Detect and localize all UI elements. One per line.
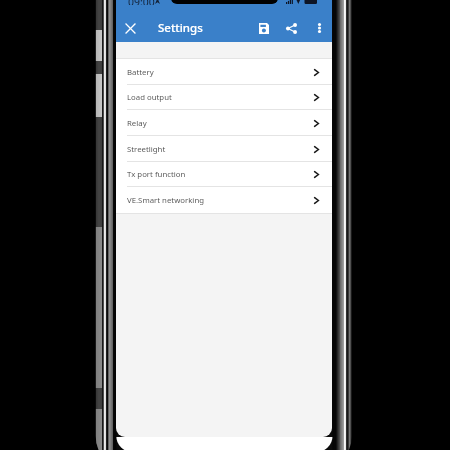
button[interactable]: Streetlight xyxy=(116,136,332,162)
staticText: Settings xyxy=(158,20,203,36)
button[interactable]: Load output xyxy=(116,85,332,110)
button[interactable]: Close xyxy=(119,17,141,39)
button[interactable]: Battery xyxy=(116,59,332,85)
button[interactable]: VE.Smart networking xyxy=(116,187,332,213)
staticText: Relay xyxy=(127,118,147,129)
staticText: Streetlight xyxy=(127,144,166,155)
button[interactable]: More options xyxy=(310,17,328,39)
button[interactable]: Relay xyxy=(116,110,332,136)
staticText: VE.Smart networking xyxy=(127,195,204,206)
staticText: Battery xyxy=(127,67,154,78)
staticText: Load output xyxy=(127,92,172,103)
staticText: 09:00 xyxy=(128,0,155,5)
button[interactable]: Tx port function xyxy=(116,162,332,187)
button[interactable]: Save xyxy=(253,17,275,39)
button[interactable]: Share xyxy=(280,17,302,39)
staticText: Tx port function xyxy=(127,169,186,180)
